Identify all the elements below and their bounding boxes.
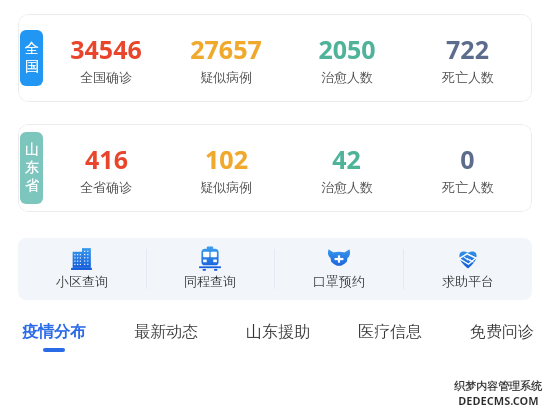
staticText: 东	[25, 159, 39, 177]
staticText: 口罩预约	[313, 273, 365, 289]
staticText: 山东援助	[246, 322, 310, 342]
staticText: 医疗信息	[358, 322, 422, 342]
staticText: 416	[85, 142, 128, 176]
button[interactable]: 山东援助	[244, 322, 312, 348]
button[interactable]: 最新动态	[132, 322, 200, 348]
staticText: 34546	[70, 32, 142, 66]
button[interactable]: 同程查询	[146, 238, 274, 300]
staticText: 死亡人数	[442, 69, 494, 85]
staticText: 国	[25, 58, 39, 76]
staticText: 102	[205, 142, 248, 176]
staticText: 疫情分布	[22, 322, 86, 342]
staticText: 治愈人数	[321, 69, 373, 85]
button[interactable]: 医疗信息	[356, 322, 424, 348]
staticText: 同程查询	[184, 273, 236, 289]
staticText: 42	[332, 142, 361, 176]
staticText: DEDECMS.COM	[458, 393, 539, 408]
staticText: 全	[25, 40, 39, 58]
button[interactable]: 口罩预约	[274, 238, 403, 300]
button[interactable]: 小区查询	[18, 238, 146, 300]
staticText: 722	[446, 32, 489, 66]
staticText: 27657	[190, 32, 262, 66]
staticText: 织梦内容管理系统	[454, 379, 542, 393]
staticText: 最新动态	[134, 322, 198, 342]
staticText: 山	[25, 141, 39, 159]
staticText: 求助平台	[442, 273, 494, 289]
button[interactable]: 求助平台	[403, 238, 532, 300]
staticText: 免费问诊	[470, 322, 534, 342]
staticText: 疑似病例	[200, 179, 252, 195]
staticText: 治愈人数	[321, 179, 373, 195]
staticText: 2050	[318, 32, 376, 66]
staticText: 0	[460, 142, 475, 176]
staticText: 死亡人数	[442, 179, 494, 195]
staticText: 省	[25, 177, 39, 195]
button[interactable]: 疫情分布	[20, 322, 88, 352]
staticText: 小区查询	[56, 273, 108, 289]
button[interactable]: 全	[18, 14, 532, 102]
staticText: 全省确诊	[80, 179, 132, 195]
staticText: 全国确诊	[80, 69, 132, 85]
button[interactable]: 免费问诊	[468, 322, 536, 348]
button[interactable]: 山	[18, 124, 532, 212]
staticText: 疑似病例	[200, 69, 252, 85]
